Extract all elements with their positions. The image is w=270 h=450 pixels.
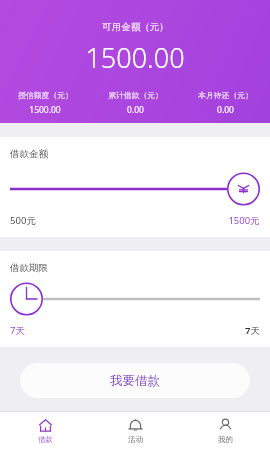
staticText: 7天: [245, 324, 260, 337]
staticText: 授信额度（元）: [18, 90, 73, 100]
staticText: 我要借款: [110, 373, 160, 389]
staticText: 我的: [218, 435, 233, 444]
staticText: 500元: [10, 214, 36, 227]
staticText: 1500.00: [29, 104, 61, 116]
staticText: 借款期限: [10, 262, 48, 274]
staticText: 借款金额: [10, 148, 48, 160]
staticText: 借款: [38, 435, 53, 444]
button[interactable]: 活动: [90, 412, 180, 450]
staticText: 活动: [128, 435, 143, 444]
button[interactable]: 借款: [0, 412, 90, 450]
staticText: 可用金额（元）: [102, 21, 169, 33]
button[interactable]: [10, 172, 260, 206]
staticText: 累计借款（元）: [108, 90, 163, 100]
button[interactable]: 我的: [180, 412, 270, 450]
staticText: 1500.00: [85, 39, 185, 76]
staticText: 0.00: [217, 104, 234, 116]
staticText: 本月待还（元）: [198, 90, 253, 100]
staticText: 7天: [10, 324, 25, 337]
staticText: 0.00: [127, 104, 144, 116]
button[interactable]: 我要借款: [20, 363, 250, 398]
button[interactable]: [10, 282, 260, 316]
staticText: 1500元: [228, 214, 260, 227]
